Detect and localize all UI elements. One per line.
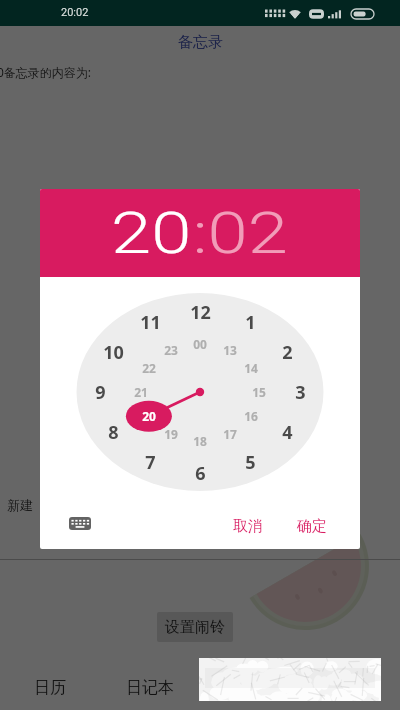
staticText: 便签	[234, 678, 266, 698]
staticText: 6	[195, 461, 206, 486]
staticText: 5	[245, 450, 256, 475]
staticText: 确定	[297, 517, 327, 536]
button[interactable]: 确定	[288, 509, 336, 544]
staticText: 02	[208, 200, 289, 267]
staticText: 设置闹铃	[165, 618, 225, 637]
button[interactable]: 取消	[224, 509, 272, 544]
staticText: 13	[223, 342, 237, 358]
staticText: 8	[108, 420, 119, 445]
staticText: 21	[134, 384, 148, 400]
staticText: 取消	[233, 517, 263, 536]
staticText: 18	[193, 433, 207, 449]
staticText: 16	[244, 408, 258, 424]
staticText: 4	[282, 420, 293, 445]
staticText: 设置	[334, 678, 366, 698]
staticText: 19	[164, 426, 178, 442]
button[interactable]: 02	[208, 200, 289, 267]
staticText: 00	[193, 336, 207, 352]
staticText: 日历	[34, 678, 66, 698]
button[interactable]: 20	[111, 200, 192, 267]
staticText: 22	[142, 360, 156, 376]
staticText: 2	[282, 340, 293, 365]
button[interactable]: 日历	[0, 662, 100, 682]
staticText: 15	[252, 384, 266, 400]
button[interactable]: 设置	[300, 662, 400, 682]
staticText: 3	[295, 380, 306, 405]
staticText: 20:02	[61, 6, 89, 19]
staticText: 12	[190, 300, 211, 325]
staticText: :	[192, 200, 208, 267]
staticText: 新建	[7, 497, 33, 513]
staticText: 日记本	[126, 678, 174, 698]
staticText: 9	[95, 380, 106, 405]
button[interactable]: 便签	[200, 662, 300, 682]
staticText: 17	[223, 426, 237, 442]
staticText: 7	[145, 450, 156, 475]
staticText: 11	[140, 310, 161, 335]
staticText: 20	[142, 408, 156, 424]
staticText: 14	[244, 360, 258, 376]
staticText: 0备忘录的内容为:	[0, 64, 92, 80]
staticText: 23	[164, 342, 178, 358]
button[interactable]: Switch to text input mode	[64, 507, 96, 539]
staticText: 20	[111, 200, 192, 267]
button[interactable]: 日记本	[100, 662, 200, 682]
staticText: 1	[245, 310, 256, 335]
button[interactable]: 设置闹铃	[157, 612, 233, 642]
staticText: 备忘录	[178, 33, 223, 52]
staticText: 10	[103, 340, 124, 365]
